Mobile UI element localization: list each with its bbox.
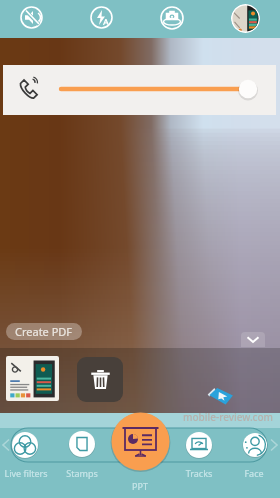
staticText: mobile-review.com bbox=[183, 410, 274, 424]
button[interactable]: Gallery bbox=[231, 4, 260, 33]
staticText: Stamps bbox=[47, 467, 117, 479]
button[interactable]: PPT bbox=[110, 411, 171, 472]
staticText: Tracks bbox=[164, 467, 234, 479]
button[interactable]: Stamps bbox=[68, 430, 96, 458]
staticText: Create PDF bbox=[15, 324, 73, 339]
button[interactable]: Create PDF bbox=[6, 323, 82, 340]
staticText: Face bbox=[219, 467, 280, 479]
button[interactable]: Switch camera bbox=[159, 5, 185, 31]
staticText: Live filters bbox=[0, 467, 61, 479]
staticText: PPT bbox=[105, 480, 175, 492]
button[interactable]: Delete bbox=[77, 357, 123, 402]
button[interactable] bbox=[3, 65, 276, 115]
button[interactable]: Sound off bbox=[19, 5, 44, 30]
button[interactable]: Page 1 bbox=[6, 356, 59, 401]
button[interactable]: Face bbox=[242, 432, 268, 458]
button[interactable]: Collapse bbox=[241, 332, 265, 347]
button[interactable]: Live filters bbox=[11, 431, 39, 459]
button[interactable]: Tracks bbox=[185, 431, 213, 459]
button[interactable]: Flash auto bbox=[89, 5, 114, 30]
